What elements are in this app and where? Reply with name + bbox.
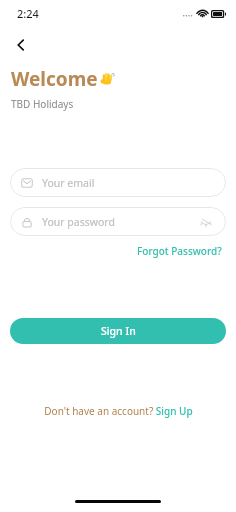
button[interactable]: Show password [197,213,215,231]
button[interactable]: Don't have an account? Sign Up [40,400,197,422]
staticText: 2:24 [17,6,39,21]
staticText: TBD Holidays [11,97,74,111]
staticText: Your password [42,215,115,229]
button[interactable]: Back [6,30,36,60]
button[interactable]: Sign In [10,318,226,344]
button[interactable]: Your email [10,168,226,197]
button[interactable]: Forgot Password? [135,242,224,260]
staticText: Welcome [11,66,98,92]
staticText: Sign In [101,324,136,338]
staticText: Don't have an account? Sign Up [44,404,193,418]
button[interactable]: Your password [10,207,226,236]
staticText: Forgot Password? [137,244,222,258]
staticText: Your email [42,176,95,190]
